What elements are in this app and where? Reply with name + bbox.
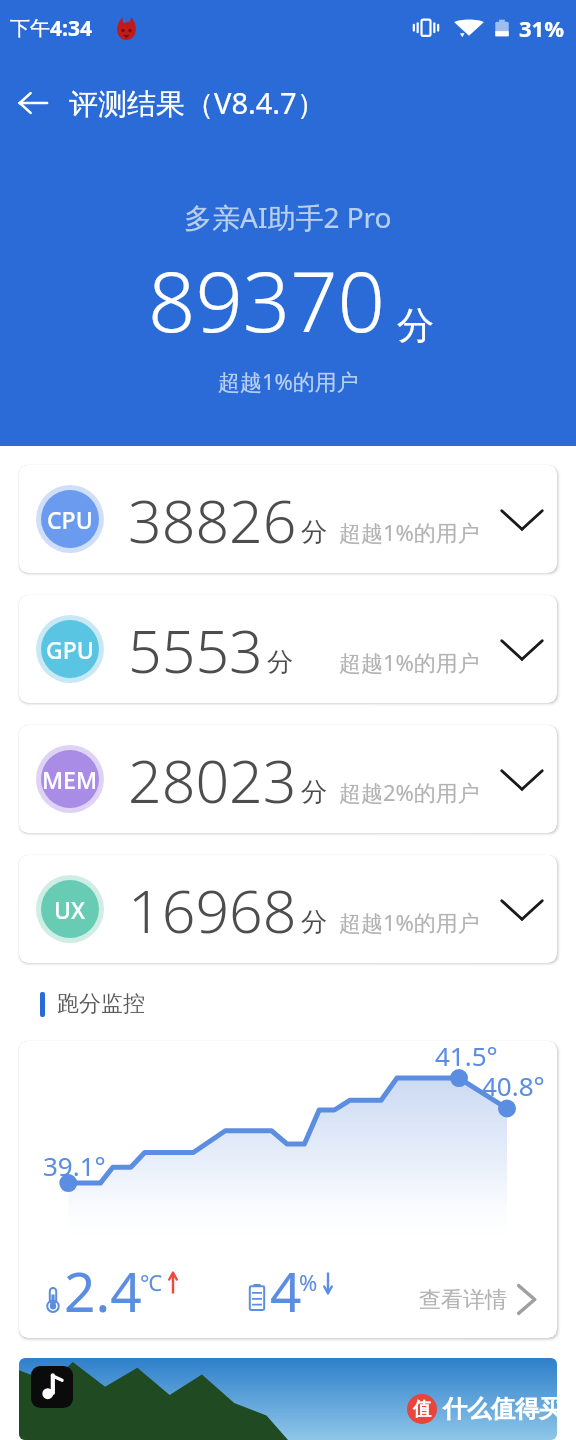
staticText: 39.1° [43,1148,106,1183]
button[interactable]: 查看详情 [419,1273,539,1325]
staticText: 什么值得买 [443,1394,557,1424]
staticText: 评测结果（V8.4.7） [69,83,326,123]
button[interactable]: 39.1° [19,1041,557,1338]
staticText: 跑分监控 [57,990,145,1018]
staticText: 超越1%的用户 [218,366,359,396]
staticText: 分 [301,776,327,809]
staticText: 16968 [128,870,297,950]
staticText: ℃ [140,1267,162,1297]
staticText: GPU [46,634,94,665]
staticText: 查看详情 [419,1286,507,1314]
staticText: 超越1%的用户 [339,647,480,677]
button[interactable]: GPU [19,595,557,703]
staticText: 38826 [128,480,297,560]
staticText: % [299,1267,318,1297]
staticText: 下午 [10,16,50,41]
staticText: 2.4 [64,1253,142,1328]
staticText: 超越2%的用户 [339,777,480,807]
staticText: 分 [301,906,327,939]
staticText: MEM [42,764,98,795]
staticText: 4:34 [50,14,92,43]
staticText: 超越1%的用户 [339,517,480,547]
staticText: 分 [397,302,434,349]
staticText: 28023 [128,740,297,820]
staticText: CPU [47,504,93,535]
staticText: 值 [413,1398,431,1421]
staticText: 41.5° [435,1041,498,1073]
staticText: 超越1%的用户 [339,907,480,937]
staticText: 多亲AI助手2 Pro [184,198,392,236]
button[interactable]: MEM [19,725,557,833]
staticText: 40.8° [482,1068,545,1103]
staticText: 分 [301,516,327,549]
staticText: 分 [267,646,293,679]
button[interactable]: 值 [19,1358,557,1440]
staticText: 31% [519,13,565,43]
button[interactable]: UX [19,855,557,963]
button[interactable]: CPU [19,465,557,573]
staticText: 89370 [148,243,385,356]
staticText: 5553 [128,610,263,690]
staticText: 4 [270,1253,302,1328]
button[interactable]: Back [0,68,66,138]
staticText: UX [54,894,86,925]
